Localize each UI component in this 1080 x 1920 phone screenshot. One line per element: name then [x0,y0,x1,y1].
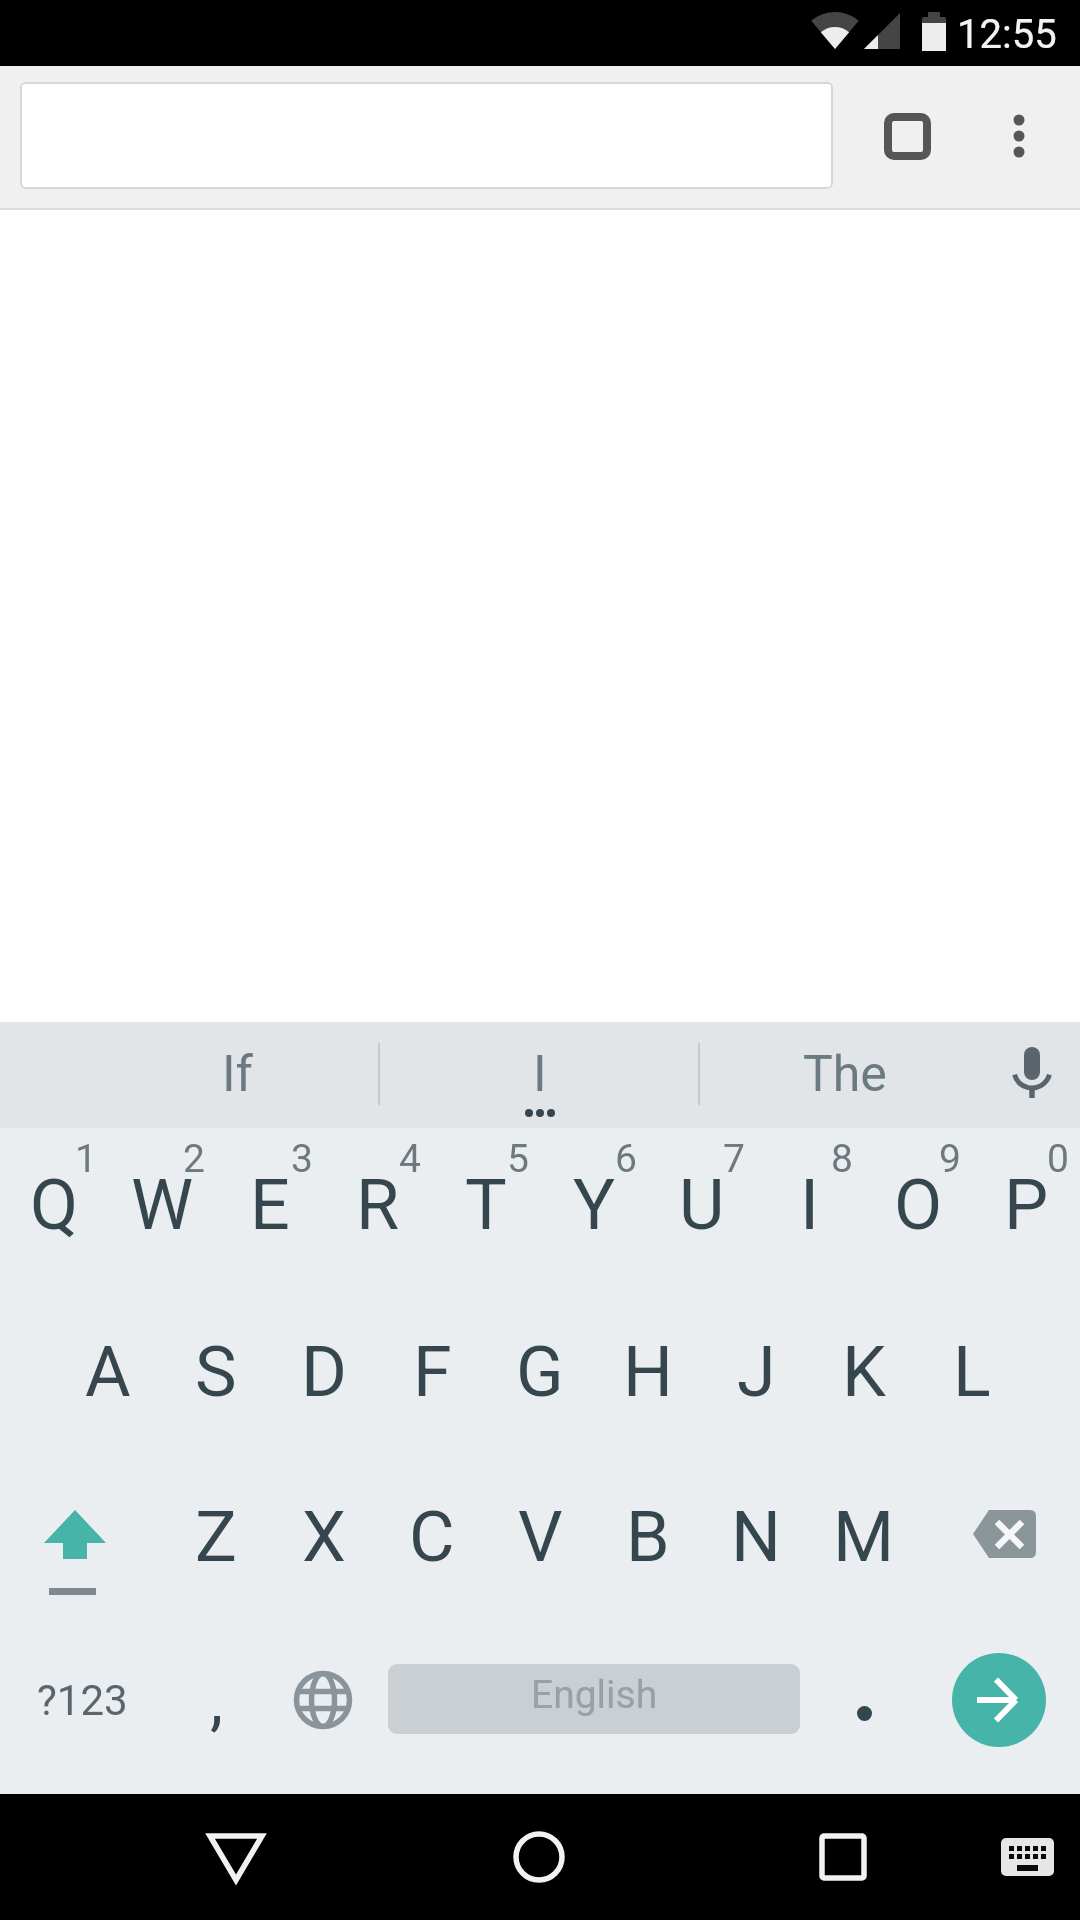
button[interactable]: Q [0,1135,124,1275]
staticText: N [731,1496,781,1578]
button[interactable]: A [38,1302,178,1442]
button[interactable] [270,1646,378,1754]
button[interactable] [20,82,833,189]
staticText: F [413,1331,452,1413]
button[interactable] [976,1794,1080,1920]
button[interactable] [985,99,1055,175]
staticText: 4 [399,1136,421,1182]
button[interactable]: English [388,1664,800,1734]
button[interactable]: E [200,1135,340,1275]
button[interactable] [161,1794,311,1920]
button[interactable]: Y [524,1135,664,1275]
staticText: C [409,1496,455,1578]
button[interactable]: I [740,1135,880,1275]
button[interactable]: Z [146,1467,286,1607]
staticText: 6 [615,1136,637,1182]
staticText: Y [573,1164,616,1246]
staticText: J [737,1331,776,1413]
staticText: Z [195,1496,237,1578]
staticText: L [953,1331,991,1413]
button[interactable]: O [848,1135,988,1275]
button[interactable]: R [308,1135,448,1275]
staticText: U [679,1164,725,1246]
button[interactable] [870,99,946,175]
button[interactable]: , [146,1630,286,1770]
staticText: E [250,1164,290,1246]
button[interactable]: I [460,1024,620,1124]
button[interactable]: P [956,1135,1080,1275]
staticText: 12:55 [957,11,1057,58]
button[interactable] [810,1646,918,1754]
button[interactable] [768,1794,918,1920]
button[interactable]: T [416,1135,556,1275]
staticText: 1 [75,1136,97,1182]
staticText: 0 [1047,1136,1069,1182]
staticText: 3 [291,1136,313,1182]
staticText: Q [30,1164,79,1246]
staticText: G [516,1331,564,1413]
button[interactable]: N [686,1467,826,1607]
button[interactable]: S [146,1302,286,1442]
button[interactable]: The [755,1024,935,1124]
button[interactable]: B [578,1467,718,1607]
staticText: M [833,1496,895,1578]
button[interactable]: If [157,1024,317,1124]
staticText: I [800,1164,820,1246]
staticText: O [894,1164,943,1246]
staticText: 5 [507,1136,529,1182]
button[interactable] [918,1462,1080,1629]
button[interactable]: D [254,1302,394,1442]
staticText: The [803,1045,887,1104]
button[interactable]: M [794,1467,934,1607]
staticText: 8 [831,1136,853,1182]
button[interactable]: J [686,1302,826,1442]
button[interactable] [464,1794,614,1920]
button[interactable]: X [254,1467,394,1607]
staticText: I [533,1045,547,1104]
button[interactable] [0,1462,162,1629]
button[interactable]: W [92,1135,232,1275]
button[interactable]: V [470,1467,610,1607]
button[interactable]: C [362,1467,502,1607]
button[interactable]: H [578,1302,718,1442]
button[interactable]: U [632,1135,772,1275]
button[interactable]: ?123 [12,1630,152,1770]
staticText: T [465,1164,507,1246]
staticText: 9 [939,1136,961,1182]
staticText: , [210,1662,223,1739]
staticText: X [302,1496,346,1578]
staticText: ?123 [37,1676,128,1725]
staticText: S [195,1331,237,1413]
staticText: B [626,1496,670,1578]
staticText: P [1004,1164,1049,1246]
button[interactable]: K [794,1302,934,1442]
button[interactable]: F [362,1302,502,1442]
button[interactable]: G [470,1302,610,1442]
staticText: W [131,1164,194,1246]
staticText: If [222,1045,253,1104]
button[interactable] [995,1032,1070,1122]
button[interactable]: L [902,1302,1042,1442]
staticText: D [301,1331,347,1413]
staticText: 2 [183,1136,205,1182]
staticText: A [85,1331,131,1413]
staticText: V [518,1496,563,1578]
staticText: H [623,1331,673,1413]
staticText: 7 [723,1136,745,1182]
staticText: R [356,1164,400,1246]
button[interactable] [952,1653,1046,1747]
staticText: English [531,1672,658,1718]
staticText: K [842,1331,886,1413]
